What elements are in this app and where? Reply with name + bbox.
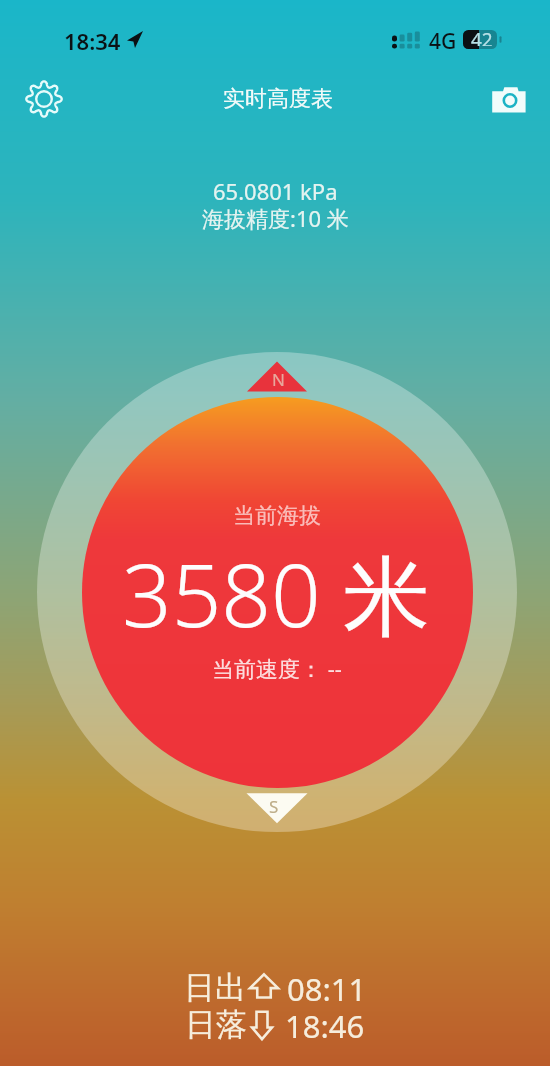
staticText: S <box>269 795 279 818</box>
staticText: 当前速度： -- <box>212 653 342 683</box>
staticText: N <box>272 368 285 391</box>
staticText: 3580 米 <box>122 534 431 653</box>
button[interactable]: Settings <box>18 73 70 125</box>
staticText: 4G <box>429 27 457 56</box>
button[interactable]: Camera <box>484 75 534 125</box>
staticText: 日出 <box>184 968 246 1007</box>
staticText: 实时高度表 <box>223 85 333 113</box>
staticText: 42 <box>471 27 493 46</box>
staticText: 当前海拔 <box>233 502 321 530</box>
staticText: 日落 <box>185 1005 247 1044</box>
staticText: 08:11 <box>287 968 367 1010</box>
staticText: 65.0801 kPa <box>213 176 338 206</box>
staticText: 18:34 <box>64 26 121 56</box>
staticText: 海拔精度:10 米 <box>202 203 349 233</box>
staticText: 18:46 <box>285 1005 365 1047</box>
